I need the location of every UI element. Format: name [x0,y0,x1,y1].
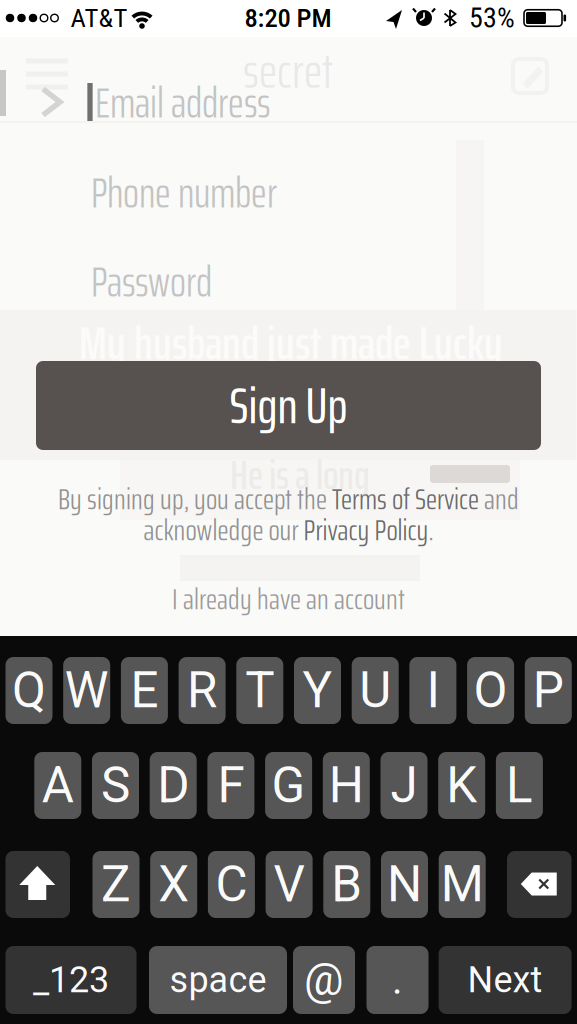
button[interactable]: Email address [95,69,535,137]
staticText: Q [12,662,46,719]
staticText: and [479,476,519,522]
button[interactable]: N [381,851,428,918]
button[interactable]: _123 [5,946,136,1014]
staticText: C [215,856,247,913]
button[interactable]: Y [294,657,341,724]
button[interactable]: Delete [507,851,571,918]
button[interactable]: Compose [513,59,547,93]
button[interactable]: Next [439,946,572,1014]
staticText: A [42,757,74,814]
button[interactable]: Z [92,851,139,918]
staticText: O [474,662,508,719]
staticText: @ [304,954,344,1006]
staticText: AT&T [70,2,127,34]
staticText: N [387,856,422,913]
button[interactable]: I already have an account [172,576,405,622]
button[interactable]: Phone number [91,159,531,227]
staticText: R [187,662,217,719]
button[interactable]: Menu [26,58,68,89]
staticText: F [217,757,244,814]
button[interactable]: space [149,946,287,1014]
staticText: P [533,662,564,719]
staticText: . [428,507,433,553]
staticText: Email address [95,70,270,136]
button[interactable]: P [525,657,572,724]
staticText: Phone number [91,160,277,226]
button[interactable]: S [92,752,139,819]
staticText: Z [101,856,131,913]
button[interactable]: L [496,752,543,819]
button[interactable]: B [323,851,370,918]
staticText: J [390,757,417,814]
staticText: By signing up, you accept the [58,476,332,522]
button[interactable]: F [207,752,254,819]
staticText: Privacy Policy [303,507,428,553]
staticText: K [446,757,477,814]
button[interactable]: C [208,851,255,918]
button[interactable]: Privacy Policy [303,507,428,553]
staticText: W [65,662,109,719]
staticText: . [392,957,403,1003]
button[interactable]: H [323,752,370,819]
staticText: V [274,856,305,913]
button[interactable]: D [150,752,197,819]
button[interactable]: Sign Up [36,361,541,450]
button[interactable]: Shift [5,851,70,918]
button[interactable]: U [352,657,399,724]
button[interactable]: @ [293,946,355,1014]
button[interactable]: A [34,752,81,819]
button[interactable]: Terms of Service [332,476,479,522]
staticText: Password [91,249,212,315]
button[interactable]: E [121,657,168,724]
staticText: Next [468,959,543,1001]
staticText: S [101,757,130,814]
staticText: Terms of Service [332,476,479,522]
staticText: E [130,662,158,719]
button[interactable]: M [439,851,486,918]
button[interactable]: V [266,851,313,918]
button[interactable]: T [236,657,283,724]
staticText: _123 [33,959,109,1001]
staticText: H [329,757,364,814]
button[interactable]: X [150,851,197,918]
button[interactable]: Password [91,248,531,316]
button[interactable]: R [179,657,226,724]
staticText: My husband just made Lucky [79,306,503,380]
button[interactable]: J [380,752,427,819]
staticText: D [157,757,189,814]
staticText: Y [302,662,332,719]
button[interactable]: O [467,657,514,724]
staticText: I already have an account [172,576,405,622]
staticText: L [506,757,533,814]
staticText: He is a long [230,443,370,506]
button[interactable]: I [409,657,456,724]
staticText: G [272,757,306,814]
button[interactable]: Q [5,657,52,724]
staticText: I [426,662,439,719]
staticText: X [158,856,189,913]
staticText: 53% [469,2,515,34]
staticText: space [169,959,266,1001]
staticText: U [359,662,391,719]
button[interactable]: G [265,752,312,819]
button[interactable]: . [366,946,428,1014]
staticText: secret [243,33,333,109]
staticText: 8:20 PM [244,2,331,34]
button[interactable]: K [438,752,485,819]
staticText: M [441,856,484,913]
staticText: Sign Up [229,366,347,445]
staticText: acknowledge our [143,507,303,553]
staticText: B [331,856,362,913]
button[interactable]: W [63,657,110,724]
staticText: T [245,662,274,719]
